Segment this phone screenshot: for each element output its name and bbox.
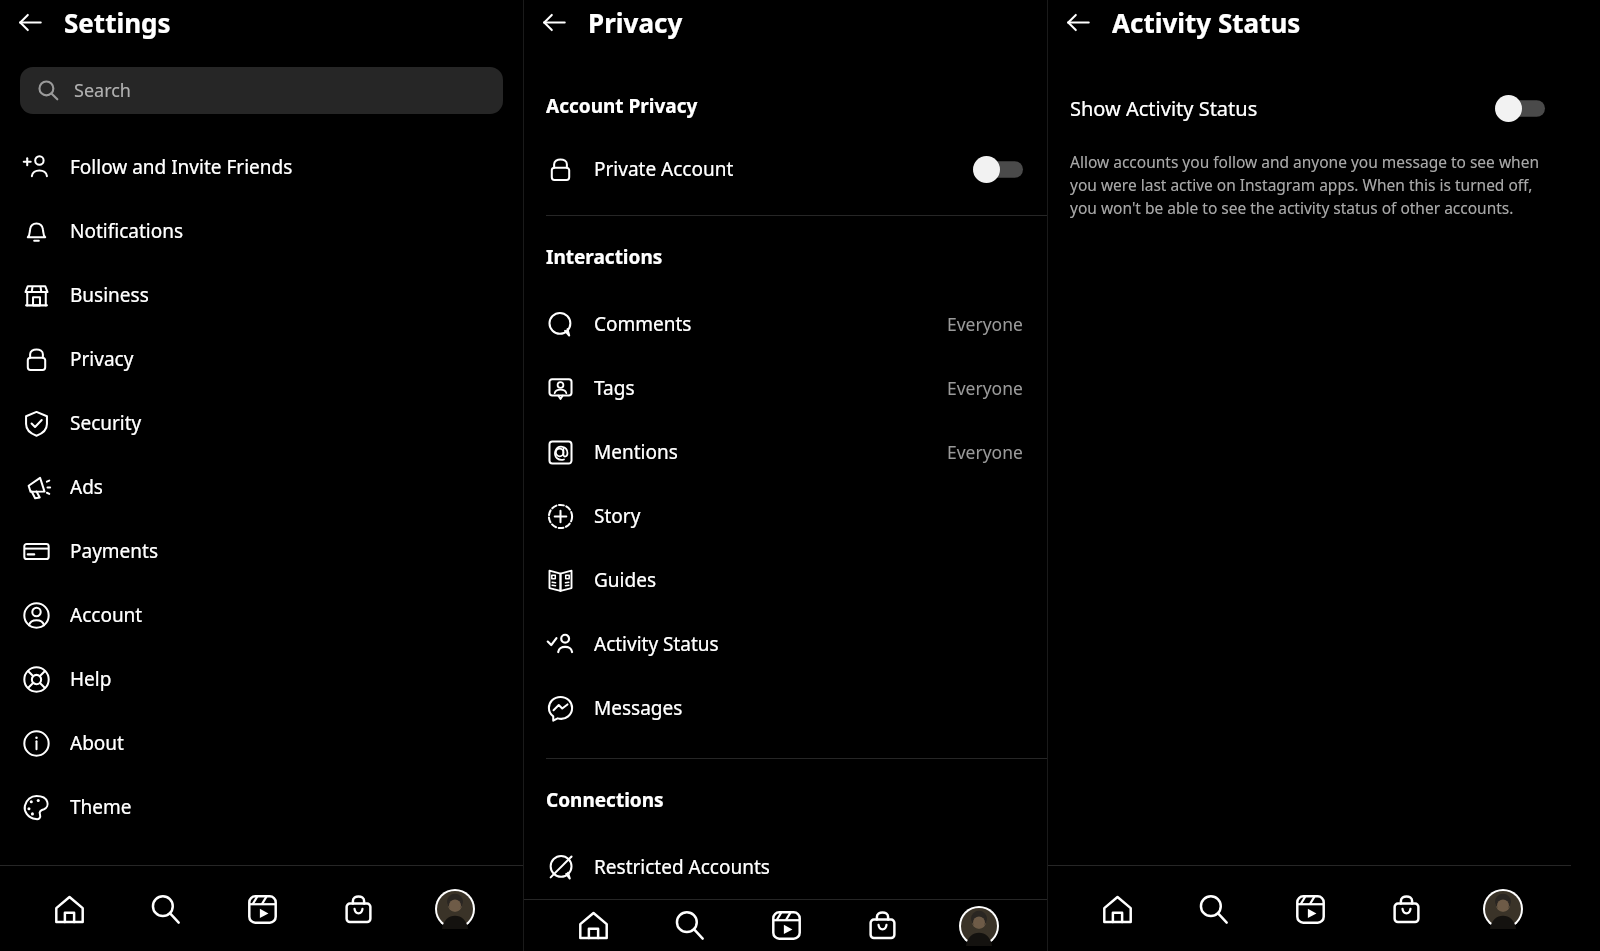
button[interactable]: Ads [0, 455, 523, 519]
button[interactable]: Back [532, 0, 576, 44]
staticText: Help [70, 666, 112, 692]
button[interactable]: Search [1185, 881, 1241, 937]
staticText: Allow accounts you follow and anyone you… [1070, 151, 1541, 219]
staticText: Everyone [947, 312, 1023, 336]
button[interactable]: Mentions [524, 420, 1047, 484]
staticText: Follow and Invite Friends [70, 154, 293, 180]
button[interactable]: Search [20, 67, 503, 114]
button[interactable]: Back [1056, 0, 1100, 44]
staticText: About [70, 730, 124, 756]
button[interactable]: Payments [0, 519, 523, 583]
staticText: Privacy [70, 346, 134, 372]
button[interactable]: Reels [234, 881, 290, 937]
button[interactable]: Tags [524, 356, 1047, 420]
staticText: Messages [594, 695, 683, 721]
button[interactable]: Private Account [524, 145, 1047, 193]
button[interactable]: Reels [1282, 881, 1338, 937]
staticText: Story [594, 503, 641, 529]
button[interactable]: Shop [1378, 881, 1434, 937]
staticText: Interactions [546, 244, 663, 270]
staticText: Private Account [594, 156, 734, 182]
button[interactable]: About [0, 711, 523, 775]
staticText: Account Privacy [546, 93, 698, 119]
button[interactable]: Toggle [973, 156, 1023, 183]
button[interactable]: Toggle [1495, 95, 1545, 122]
staticText: Ads [70, 474, 103, 500]
button[interactable]: Back [8, 0, 52, 44]
staticText: Activity Status [1112, 5, 1301, 40]
staticText: Theme [70, 794, 132, 820]
staticText: Restricted Accounts [594, 854, 770, 880]
staticText: Notifications [70, 218, 184, 244]
button[interactable]: Story [524, 484, 1047, 548]
button[interactable]: Shop [330, 881, 386, 937]
button[interactable]: Profile [427, 881, 483, 937]
button[interactable]: Profile [1475, 881, 1531, 937]
staticText: Connections [546, 787, 664, 813]
button[interactable]: Theme [0, 775, 523, 839]
staticText: Activity Status [594, 631, 719, 657]
staticText: Mentions [594, 439, 678, 465]
button[interactable]: Reels [758, 900, 814, 951]
button[interactable]: Activity Status [524, 612, 1047, 676]
staticText: Account [70, 602, 143, 628]
button[interactable]: Follow and Invite Friends [0, 135, 523, 199]
button[interactable]: Home [41, 881, 97, 937]
button[interactable]: Comments [524, 292, 1047, 356]
button[interactable]: Messages [524, 676, 1047, 740]
staticText: Security [70, 410, 142, 436]
staticText: Everyone [947, 376, 1023, 400]
button[interactable]: Home [1089, 881, 1145, 937]
button[interactable]: Guides [524, 548, 1047, 612]
staticText: Comments [594, 311, 692, 337]
button[interactable]: Search [661, 900, 717, 951]
staticText: Privacy [588, 5, 683, 40]
staticText: Business [70, 282, 149, 308]
button[interactable]: Notifications [0, 199, 523, 263]
staticText: Show Activity Status [1070, 95, 1258, 122]
button[interactable]: Security [0, 391, 523, 455]
button[interactable]: Shop [854, 900, 910, 951]
button[interactable]: Account [0, 583, 523, 647]
button[interactable]: Home [565, 900, 621, 951]
button[interactable]: Search [137, 881, 193, 937]
staticText: Payments [70, 538, 159, 564]
button[interactable]: Show Activity Status [1048, 86, 1571, 130]
button[interactable]: Profile [951, 900, 1007, 951]
button[interactable]: Business [0, 263, 523, 327]
staticText: Guides [594, 567, 656, 593]
staticText: Settings [64, 5, 171, 40]
staticText: Everyone [947, 440, 1023, 464]
staticText: Search [74, 78, 131, 103]
staticText: Tags [594, 375, 635, 401]
button[interactable]: Restricted Accounts [524, 835, 1047, 899]
button[interactable]: Privacy [0, 327, 523, 391]
button[interactable]: Help [0, 647, 523, 711]
